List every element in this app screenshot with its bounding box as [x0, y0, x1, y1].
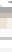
button[interactable]: More — [10, 4, 12, 7]
button[interactable]: Back — [0, 4, 2, 7]
staticText: ‹ — [0, 3, 1, 8]
staticText: ··· — [10, 2, 12, 9]
